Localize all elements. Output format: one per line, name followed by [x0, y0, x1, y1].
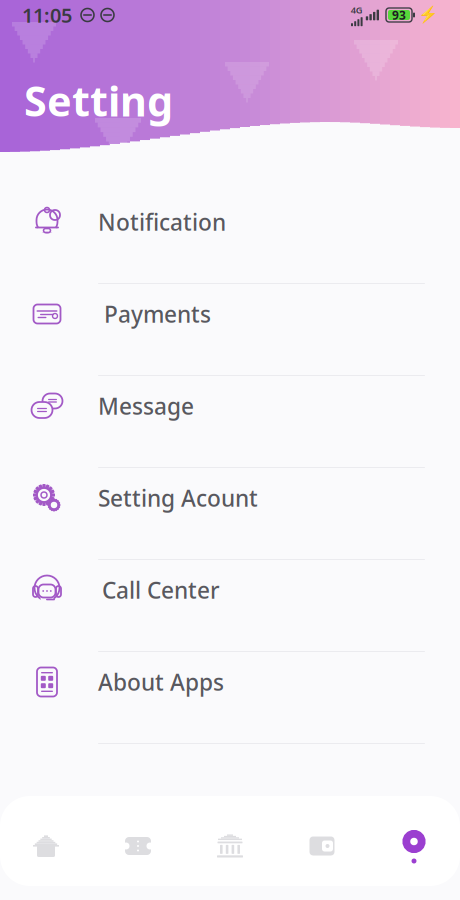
button[interactable]: Tickets — [92, 815, 184, 877]
button[interactable]: Wallet — [276, 815, 368, 877]
button[interactable]: About Apps — [0, 652, 460, 744]
staticText: 4G — [351, 4, 363, 16]
button[interactable]: Settings — [368, 815, 460, 877]
staticText: Payments — [104, 299, 211, 329]
staticText: Message — [98, 391, 194, 421]
staticText: Notification — [98, 207, 226, 237]
staticText: About Apps — [98, 667, 224, 697]
staticText: 11:05 — [22, 2, 72, 28]
button[interactable]: Message — [0, 376, 460, 468]
button[interactable]: Call Center — [0, 560, 460, 652]
staticText: Call Center — [102, 575, 220, 605]
staticText: Setting — [24, 73, 173, 128]
button[interactable]: Bank — [184, 815, 276, 877]
staticText: 93 — [392, 7, 406, 23]
button[interactable]: Payments — [0, 284, 460, 376]
staticText: ⚡ — [418, 6, 438, 24]
staticText: Setting Acount — [98, 483, 258, 513]
button[interactable]: Setting Acount — [0, 468, 460, 560]
button[interactable]: Notification — [0, 192, 460, 284]
button[interactable]: Home — [0, 815, 92, 877]
